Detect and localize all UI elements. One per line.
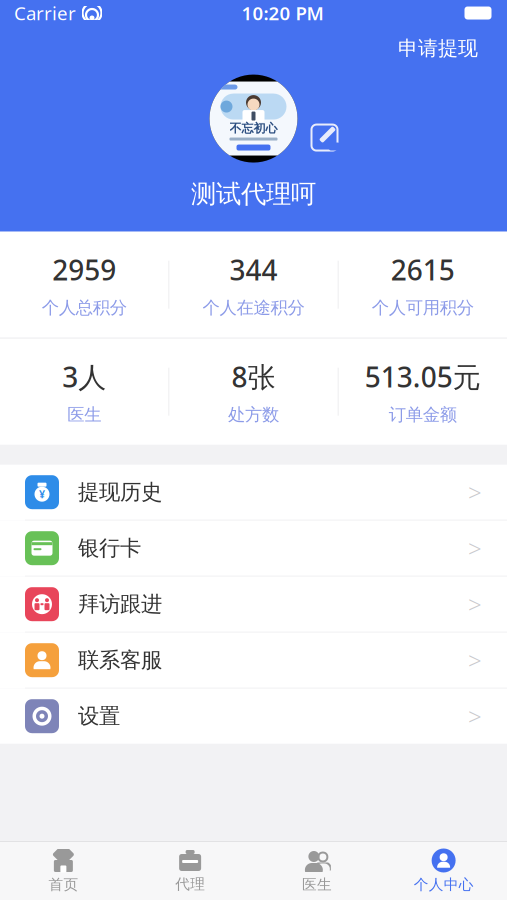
staticText: 513.05元 [365, 358, 481, 395]
staticText: > [468, 700, 482, 732]
staticText: 个人可用积分 [372, 297, 474, 318]
staticText: > [468, 476, 482, 508]
staticText: 银行卡 [78, 535, 141, 561]
staticText: 测试代理呵 [191, 179, 316, 210]
staticText: 处方数 [228, 404, 279, 425]
staticText: 医生 [302, 875, 332, 893]
staticText: > [468, 588, 482, 620]
button[interactable]: 银行卡 [0, 521, 507, 577]
staticText: 设置 [78, 703, 120, 729]
staticText: 医生 [67, 404, 101, 425]
staticText: ¥ [39, 487, 45, 501]
staticText: 提现历史 [78, 479, 162, 505]
staticText: 8张 [231, 358, 275, 395]
staticText: 2959 [52, 251, 116, 288]
staticText: 2615 [391, 251, 455, 288]
staticText: 订单金额 [389, 404, 457, 425]
button[interactable]: 设置 [0, 689, 507, 744]
staticText: Carrier [14, 1, 76, 25]
staticText: 个人中心 [414, 875, 474, 893]
button[interactable]: 首页 [0, 842, 127, 900]
button[interactable]: 代理 [127, 842, 254, 900]
staticText: 10:20 PM [241, 1, 323, 25]
staticText: > [468, 532, 482, 564]
staticText: 联系客服 [78, 647, 162, 673]
staticText: 个人总积分 [42, 297, 127, 318]
button[interactable]: 联系客服 [0, 633, 507, 689]
staticText: 代理 [175, 875, 205, 893]
staticText: > [468, 644, 482, 676]
staticText: 申请提现 [398, 36, 478, 61]
staticText: 个人在途积分 [202, 297, 304, 318]
button[interactable]: 个人中心 [380, 842, 507, 900]
staticText: 拜访跟进 [78, 591, 162, 617]
button[interactable]: 医生 [253, 842, 380, 900]
staticText: 首页 [48, 875, 78, 893]
staticText: 3人 [62, 358, 106, 395]
button[interactable]: 申请提现 [392, 32, 484, 65]
staticText: 不忘初心 [229, 121, 277, 135]
button[interactable]: Edit profile [309, 85, 339, 153]
staticText: 344 [229, 251, 277, 288]
button[interactable]: 拜访跟进 [0, 577, 507, 633]
button[interactable]: ¥ [0, 465, 507, 521]
